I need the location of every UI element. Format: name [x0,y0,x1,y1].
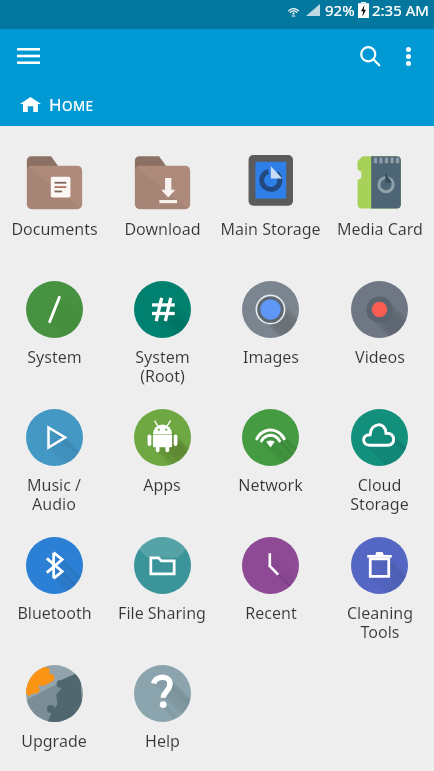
staticText: 92% [325,0,355,20]
button[interactable]: Download [108,126,216,240]
button[interactable]: Help [108,638,216,752]
staticText: 2:35 AM [372,0,429,20]
staticText: File Sharing [118,602,206,624]
staticText: Bluetooth [17,602,92,624]
button[interactable]: Upgrade [0,638,108,752]
button[interactable]: More options [390,38,426,74]
staticText: Help [145,730,180,752]
staticText: Cloud Storage [350,474,409,515]
staticText: Documents [11,218,98,240]
button[interactable]: Images [216,254,325,368]
staticText: Cleaning Tools [347,602,413,643]
staticText: Upgrade [21,730,87,752]
button[interactable]: Media Card [325,126,434,240]
button[interactable]: Apps [108,382,216,496]
button[interactable]: System [0,254,108,368]
button[interactable]: Cleaning Tools [325,510,434,638]
staticText: Media Card [337,218,423,240]
staticText: Main Storage [220,218,321,240]
button[interactable]: Network [216,382,325,496]
button[interactable]: Recent [216,510,325,624]
button[interactable]: File Sharing [108,510,216,624]
button[interactable]: Cloud Storage [325,382,434,510]
button[interactable]: Bluetooth [0,510,108,624]
staticText: Music / Audio [27,474,81,515]
staticText: System [27,346,82,368]
button[interactable]: Documents [0,126,108,240]
button[interactable]: Videos [325,254,434,368]
staticText: System (Root) [135,346,190,387]
button[interactable]: Open navigation menu [12,40,44,72]
staticText: Recent [245,602,297,624]
button[interactable]: Main Storage [216,126,325,240]
button[interactable]: H [0,83,434,126]
staticText: Network [238,474,303,496]
button[interactable]: System (Root) [108,254,216,382]
staticText: Apps [143,474,181,496]
staticText: OME [62,97,94,115]
button[interactable]: Music / Audio [0,382,108,510]
staticText: Download [124,218,201,240]
staticText: H [49,93,62,116]
staticText: Images [243,346,299,368]
button[interactable]: Search [350,36,390,76]
staticText: Videos [355,346,405,368]
